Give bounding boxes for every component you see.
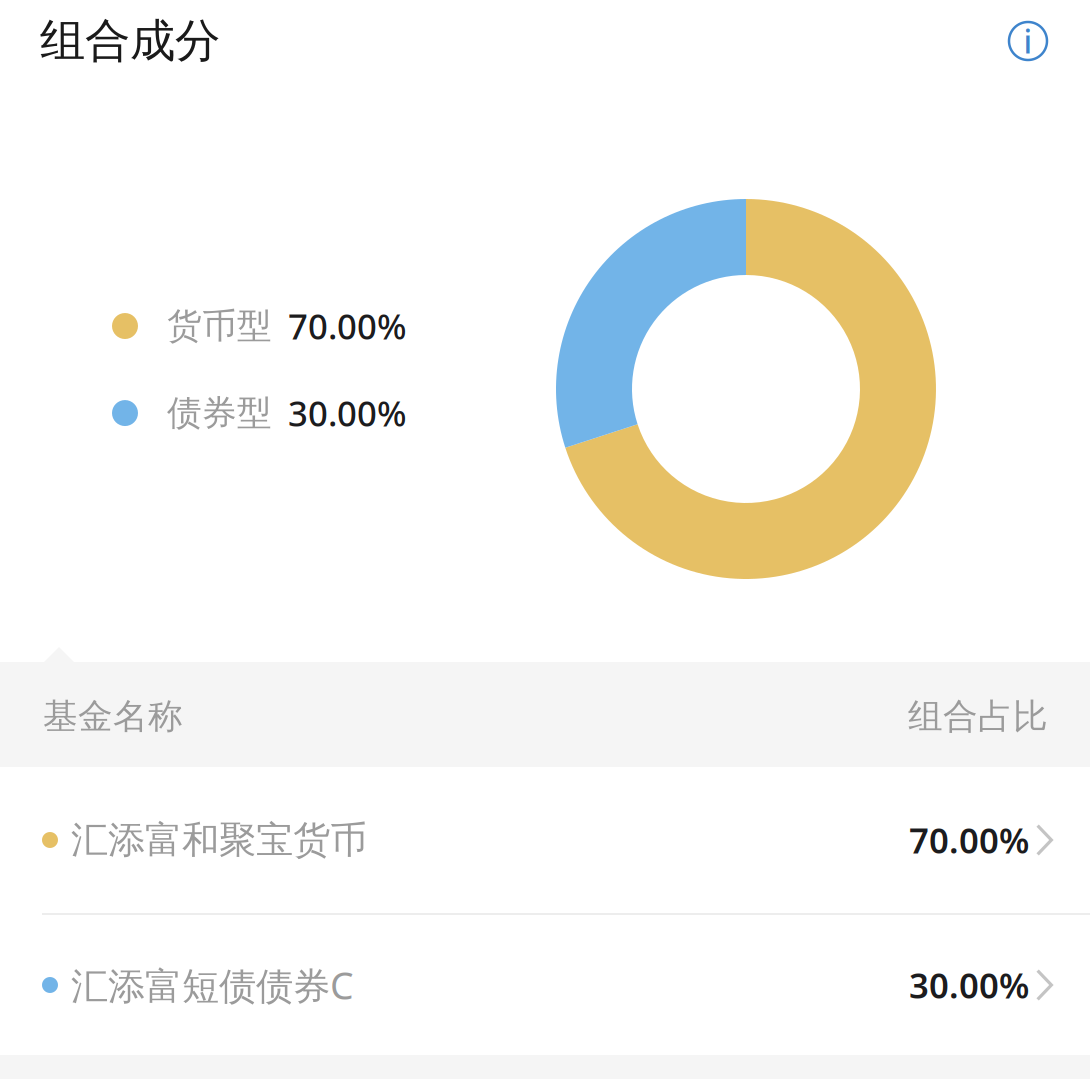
staticText: 组合占比 bbox=[908, 695, 1048, 738]
button[interactable]: 汇添富短债债券C bbox=[0, 915, 1090, 1055]
staticText: 债券型 bbox=[167, 392, 272, 434]
staticText: 汇添富短债债券C bbox=[71, 960, 354, 1010]
staticText: 基金名称 bbox=[43, 695, 183, 738]
staticText: 汇添富和聚宝货币 bbox=[71, 817, 367, 863]
staticText: 30.00% bbox=[288, 390, 407, 436]
staticText: 70.00% bbox=[909, 817, 1029, 863]
button[interactable]: 汇添富和聚宝货币 bbox=[0, 767, 1090, 913]
staticText: 30.00% bbox=[909, 962, 1029, 1008]
staticText: 货币型 bbox=[167, 305, 272, 347]
staticText: 组合成分 bbox=[40, 13, 220, 69]
staticText: 70.00% bbox=[288, 303, 407, 349]
staticText: i bbox=[1023, 20, 1032, 62]
button[interactable]: Info bbox=[1004, 17, 1052, 65]
